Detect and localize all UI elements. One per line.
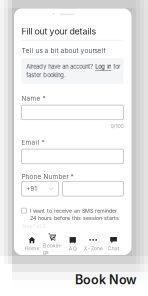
staticText: Book Now <box>75 272 137 287</box>
button[interactable]: Log in <box>95 63 111 70</box>
button[interactable]: Home <box>22 236 42 252</box>
staticText: Already have an account? <box>26 63 95 70</box>
button[interactable]: AQ <box>62 236 83 252</box>
staticText: X-Zone <box>84 245 103 252</box>
staticText: Bookings <box>43 242 62 255</box>
button[interactable]: +91 <box>21 181 58 196</box>
staticText: Phone Number * <box>21 173 73 180</box>
button[interactable]: X-Zone <box>83 236 103 252</box>
button[interactable]: Bookings <box>42 236 62 252</box>
staticText: AQ <box>69 245 77 252</box>
staticText: for <box>111 63 120 70</box>
staticText: I want to receive an SMS reminder <box>30 207 117 214</box>
staticText: Fill out your details <box>21 26 96 37</box>
button[interactable]: I want to receive an SMS reminder <box>21 207 123 221</box>
staticText: faster booking. <box>26 71 66 78</box>
staticText: Tell us a bit about yourself <box>21 47 105 55</box>
button[interactable]: Chat <box>103 236 124 252</box>
staticText: Name * <box>21 94 45 102</box>
staticText: Home <box>24 245 39 252</box>
staticText: 0/100 <box>110 123 123 129</box>
staticText: Log in <box>95 63 111 70</box>
staticText: Step 1 of 2 <box>21 223 45 229</box>
staticText: +91 <box>26 185 36 192</box>
staticText: 24 hours before this session starts <box>30 215 119 221</box>
staticText: Chat <box>107 245 119 252</box>
staticText: Email * <box>21 138 44 146</box>
